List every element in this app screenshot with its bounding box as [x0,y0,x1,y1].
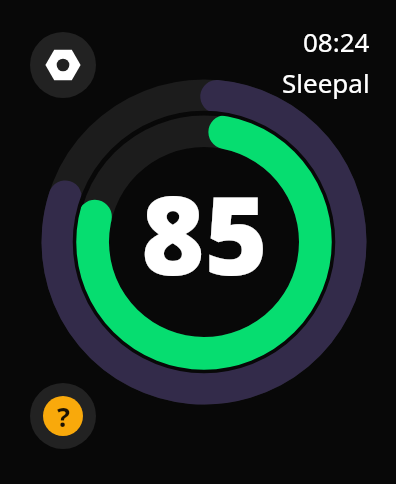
button[interactable]: Sleep settings [30,32,96,98]
staticText: 08:24 [303,24,370,59]
button[interactable]: Help [30,383,96,449]
button[interactable]: Sleep score 85 [92,130,316,354]
staticText: Sleepal [282,65,370,100]
staticText: 85 [141,160,268,307]
staticText: ? [57,398,70,435]
